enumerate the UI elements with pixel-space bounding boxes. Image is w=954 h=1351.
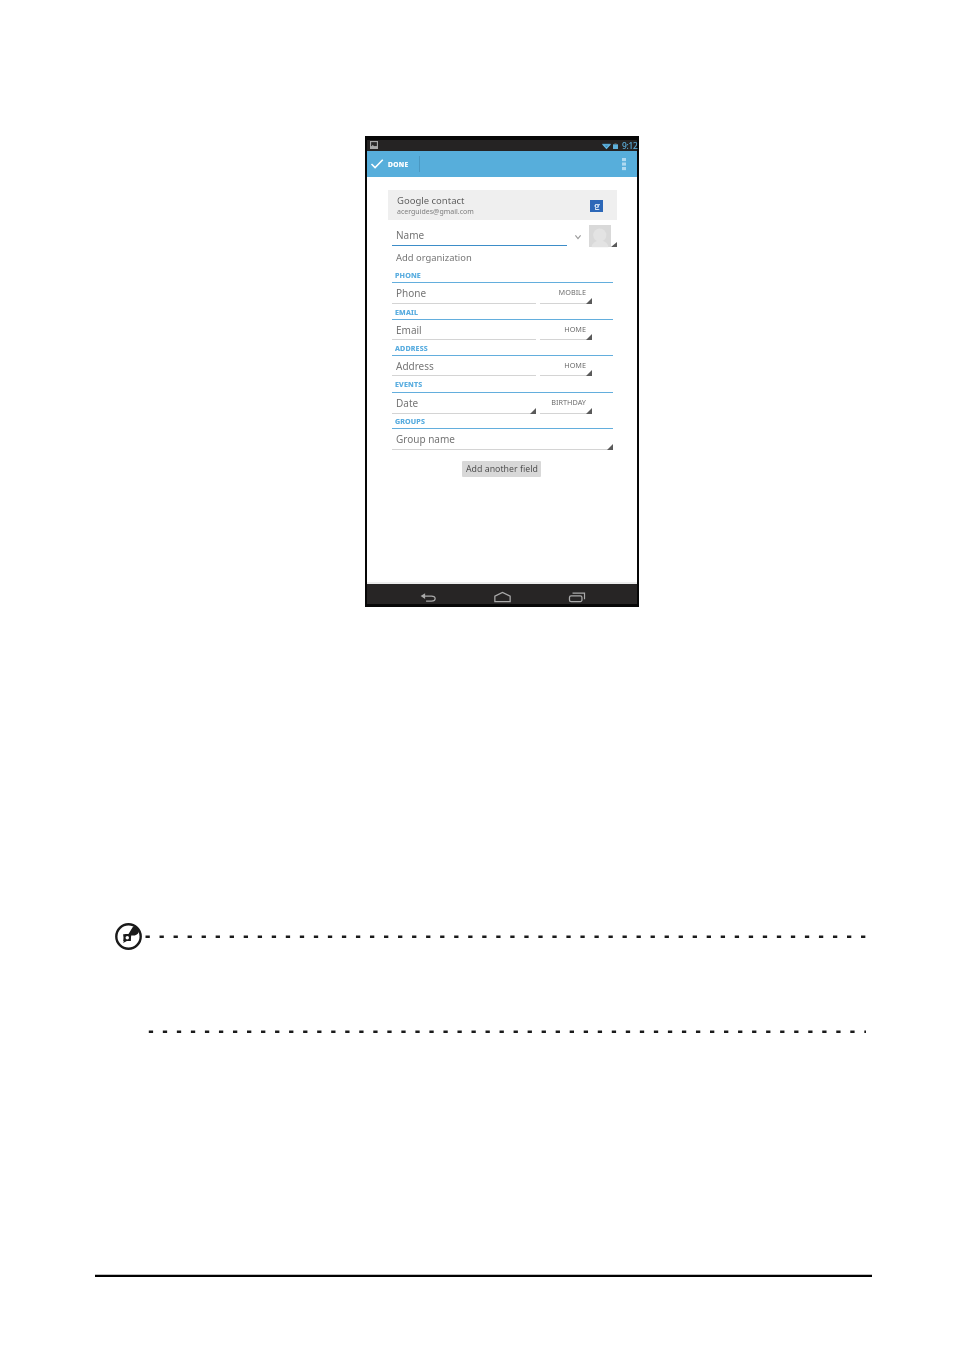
staticText: HOME [564,324,586,334]
button[interactable]: Expand name [575,235,581,239]
button[interactable]: Add organization [392,249,613,266]
staticText: DONE [388,160,409,169]
staticText: EMAIL [395,307,419,317]
staticText: PHONE [395,270,421,280]
staticText: g [594,198,600,210]
button[interactable]: Back [417,584,439,604]
staticText: EVENTS [395,379,423,389]
staticText: HOME [564,360,586,370]
button[interactable]: DONE [367,151,419,177]
staticText: Phone [396,286,427,300]
button[interactable]: Date [392,392,536,414]
staticText: GROUPS [395,416,425,426]
staticText: ADDRESS [395,343,428,353]
button[interactable]: Name [392,225,567,246]
staticText: Add another field [466,463,538,475]
staticText: Google contact [397,194,465,207]
button[interactable]: MOBILE [540,282,592,304]
staticText: 9:12 [622,140,638,151]
staticText: acerguides@gmail.com [397,207,474,217]
button[interactable]: Add photo [589,225,611,247]
button[interactable]: Phone [392,282,536,304]
button[interactable]: Email [392,319,536,340]
button[interactable]: Group name [392,428,613,450]
staticText: BIRTHDAY [551,397,586,407]
button[interactable]: Google contact [388,190,617,220]
button[interactable]: HOME [540,319,592,340]
button[interactable]: Add another field [462,461,541,477]
button[interactable]: Home [491,584,513,604]
staticText: Date [396,396,419,410]
button[interactable]: More options [619,151,637,177]
staticText: Email [396,323,422,337]
button[interactable]: Recent apps [566,584,588,604]
button[interactable]: HOME [540,355,592,376]
staticText: MOBILE [558,287,586,297]
button[interactable]: Address [392,355,536,376]
staticText: Group name [396,432,455,446]
button[interactable]: BIRTHDAY [540,392,592,414]
staticText: Address [396,359,434,373]
staticText: Add organization [396,251,472,264]
staticText: Name [396,228,425,242]
